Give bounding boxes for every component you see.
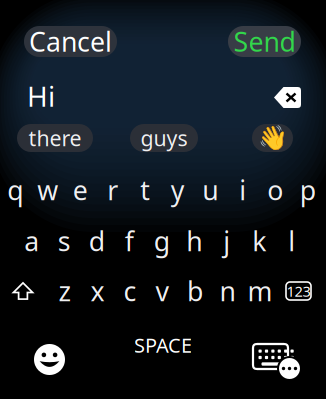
staticText: c <box>123 273 136 309</box>
staticText: q <box>7 172 23 208</box>
button[interactable]: d <box>80 223 113 259</box>
button[interactable]: c <box>114 273 146 309</box>
button[interactable]: u <box>194 172 226 208</box>
button[interactable]: SPACE <box>123 333 203 357</box>
button[interactable]: Shift <box>7 273 39 309</box>
staticText: t <box>140 172 150 208</box>
button[interactable]: e <box>64 172 96 208</box>
staticText: e <box>73 172 88 208</box>
button[interactable]: f <box>113 223 145 259</box>
button[interactable]: there <box>17 124 93 152</box>
button[interactable]: j <box>210 223 243 259</box>
staticText: i <box>239 172 246 208</box>
button[interactable]: v <box>146 273 179 309</box>
button[interactable]: a <box>15 223 48 259</box>
button[interactable]: Numbers and symbols <box>282 273 315 309</box>
staticText: k <box>252 223 266 259</box>
staticText: y <box>171 172 185 208</box>
staticText: guys <box>140 124 187 152</box>
staticText: d <box>89 223 105 259</box>
staticText: Cancel <box>29 24 112 59</box>
button[interactable]: q <box>0 172 31 208</box>
staticText: z <box>58 273 71 309</box>
staticText: j <box>223 223 230 259</box>
staticText: there <box>28 124 81 152</box>
button[interactable]: b <box>179 273 211 309</box>
staticText: a <box>24 223 39 259</box>
staticText: n <box>219 273 235 309</box>
button[interactable]: z <box>49 273 81 309</box>
button[interactable]: k <box>243 223 275 259</box>
staticText: f <box>125 223 134 259</box>
button[interactable]: Send <box>228 26 301 57</box>
staticText: g <box>154 223 170 259</box>
staticText: v <box>155 273 169 309</box>
button[interactable]: g <box>145 223 178 259</box>
staticText: 123 <box>286 281 310 301</box>
staticText: 👋 <box>257 124 287 152</box>
button[interactable]: Delete <box>274 87 301 108</box>
button[interactable]: s <box>48 223 80 259</box>
staticText: b <box>187 273 203 309</box>
staticText: p <box>300 172 316 208</box>
button[interactable]: l <box>275 223 308 259</box>
button[interactable]: o <box>259 172 291 208</box>
staticText: o <box>267 172 283 208</box>
button[interactable]: y <box>161 172 194 208</box>
staticText: Hi <box>27 77 55 115</box>
staticText: w <box>37 172 58 208</box>
button[interactable]: w <box>31 172 64 208</box>
staticText: m <box>247 273 272 309</box>
button[interactable]: m <box>244 273 276 309</box>
button[interactable]: r <box>96 172 129 208</box>
button[interactable]: t <box>129 172 161 208</box>
button[interactable]: i <box>226 172 259 208</box>
staticText: l <box>288 223 295 259</box>
staticText: u <box>202 172 218 208</box>
staticText: s <box>58 223 71 259</box>
button[interactable]: guys <box>130 124 198 152</box>
button[interactable]: p <box>291 172 324 208</box>
button[interactable]: h <box>178 223 210 259</box>
staticText: x <box>90 273 104 309</box>
button[interactable]: Keyboard options <box>253 343 302 381</box>
button[interactable]: x <box>81 273 114 309</box>
staticText: h <box>186 223 202 259</box>
staticText: SPACE <box>134 332 192 358</box>
button[interactable]: Cancel <box>24 26 117 57</box>
staticText: r <box>107 172 118 208</box>
button[interactable]: Wave emoji <box>252 124 293 152</box>
button[interactable]: n <box>211 273 244 309</box>
button[interactable]: Emoji <box>34 344 65 375</box>
staticText: Send <box>233 24 295 59</box>
